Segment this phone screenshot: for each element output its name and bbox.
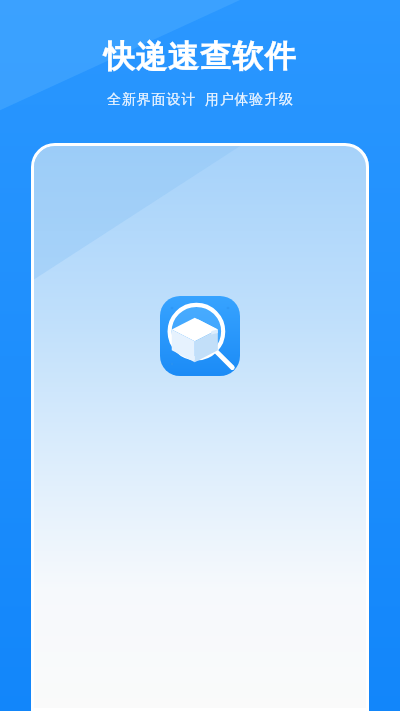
staticText: 快递速查软件 (103, 37, 297, 76)
staticText: 全新界面设计 用户体验升级 (107, 89, 294, 108)
button[interactable]: 快递速查 app icon (160, 296, 240, 376)
